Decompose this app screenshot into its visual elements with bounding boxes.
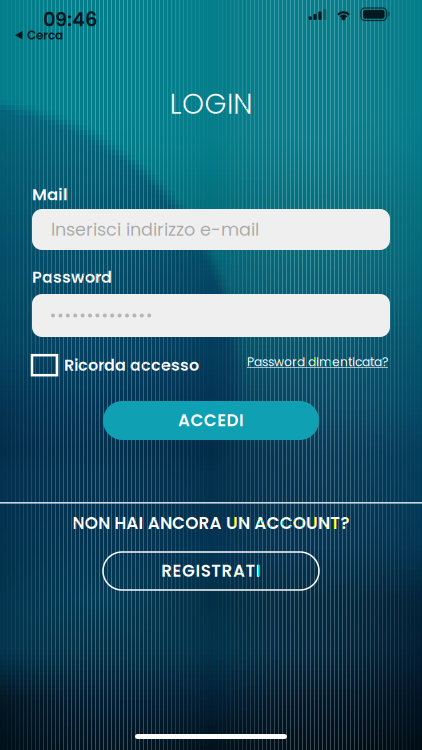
button[interactable]: Password dimenticata? bbox=[246, 353, 388, 371]
staticText: 09:46 bbox=[43, 6, 97, 33]
button[interactable]: ACCEDI bbox=[103, 401, 319, 440]
staticText: LOGIN bbox=[170, 84, 252, 124]
staticText: Password bbox=[32, 266, 112, 288]
button[interactable]: REGISTRATI bbox=[103, 552, 319, 590]
staticText: ACCEDI bbox=[178, 409, 244, 432]
staticText: Ricorda accesso bbox=[64, 354, 199, 376]
staticText: Inserisci indirizzo e-mail bbox=[51, 217, 259, 242]
button[interactable]: Cerca bbox=[10, 24, 68, 47]
staticText: Mail bbox=[32, 183, 68, 206]
staticText: REGISTRATI bbox=[161, 559, 261, 583]
button[interactable]: Ricorda accesso bbox=[32, 354, 199, 376]
staticText: Password dimenticata? bbox=[247, 353, 388, 371]
staticText: Cerca bbox=[27, 27, 63, 44]
staticText: NON HAI ANCORA UN ACCOUNT? bbox=[73, 511, 349, 535]
